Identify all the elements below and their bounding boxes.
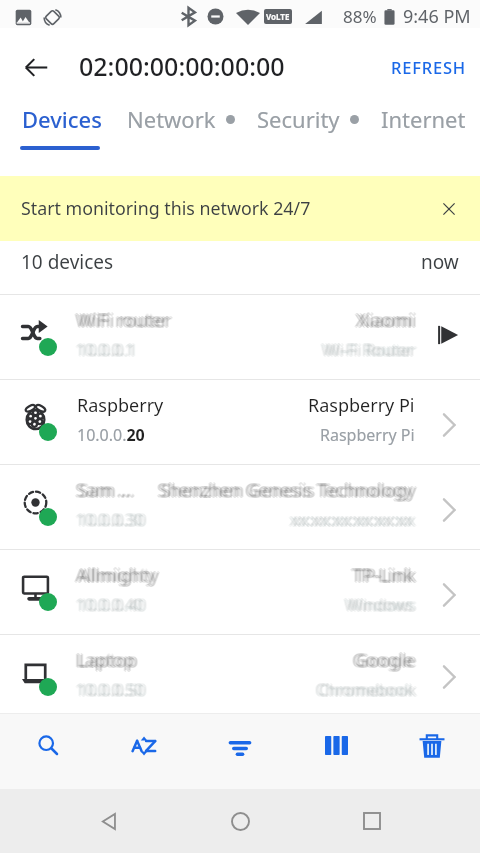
staticText: Shenzhen Genesis Technology — [160, 479, 416, 504]
button[interactable]: Allmighty — [0, 550, 480, 634]
staticText: Sam ... — [74, 478, 130, 503]
staticText: WiFi router — [76, 307, 170, 332]
staticText: Wi-Fi Router — [324, 340, 416, 362]
staticText: Xiaomi — [360, 308, 418, 333]
button[interactable]: Raspberry — [0, 380, 480, 464]
staticText: 10.0.0.1 — [76, 338, 135, 360]
staticText: Internet — [381, 104, 466, 134]
staticText: Xiaomi — [359, 307, 417, 332]
staticText: Shenzhen Genesis Technology — [159, 478, 415, 503]
staticText: Xiaomi — [356, 307, 414, 332]
staticText: 10.0.0.30 — [74, 509, 142, 531]
staticText: Allmighty — [74, 563, 155, 588]
staticText: TP-Link — [354, 564, 416, 589]
button[interactable]: Sort alphabetically — [96, 714, 192, 789]
button[interactable]: REFRESH — [375, 48, 480, 86]
staticText: Google — [354, 648, 415, 673]
staticText: Allmighty — [79, 562, 160, 587]
staticText: Shenzhen Genesis Technology — [162, 478, 418, 503]
staticText: Security — [257, 104, 340, 134]
staticText: 10.0.0.50 — [74, 679, 142, 701]
staticText: now — [421, 249, 459, 275]
button[interactable]: Back — [18, 49, 55, 86]
staticText: Shenzhen Genesis Technology — [157, 477, 413, 502]
staticText: Google — [353, 647, 414, 672]
staticText: 10 devices — [21, 249, 114, 275]
staticText: Shenzhen Genesis Technology — [158, 477, 414, 502]
staticText: 10.0.0.30 — [75, 510, 143, 532]
staticText: Google — [355, 649, 416, 674]
staticText: TP-Link — [351, 564, 413, 589]
staticText: Sam ... — [79, 479, 135, 504]
staticText: WiFi router — [79, 307, 173, 332]
staticText: Raspberry — [77, 393, 164, 418]
staticText: 10.0.0.1 — [75, 340, 134, 362]
button[interactable]: Close — [432, 192, 466, 226]
staticText: Chromebook — [317, 679, 415, 701]
staticText: 10.0.0.50 — [80, 679, 148, 701]
staticText: Wi-Fi Router — [325, 340, 417, 362]
button[interactable]: Delete — [384, 714, 480, 789]
button[interactable]: Back — [84, 797, 132, 845]
staticText: Allmighty — [75, 564, 156, 589]
staticText: Sam ... — [75, 477, 131, 502]
staticText: 10.0.0.40 — [74, 594, 142, 616]
staticText: Allmighty — [79, 564, 160, 589]
staticText: Xiaomi — [357, 308, 415, 333]
staticText: 10.0.0.1 — [77, 339, 136, 361]
staticText: 10.0.0.1 — [74, 339, 133, 361]
staticText: Wi-Fi Router — [326, 339, 418, 361]
button[interactable]: Columns — [288, 714, 384, 789]
staticText: Laptop — [76, 647, 136, 672]
staticText: Sam ... — [77, 478, 133, 503]
staticText: Sam ... — [80, 478, 136, 503]
staticText: TP-Link — [352, 562, 414, 587]
staticText: 88% — [343, 5, 377, 28]
staticText: WiFi router — [75, 307, 169, 332]
staticText: TP-Link — [355, 564, 417, 589]
staticText: 10.0.0.50 — [79, 678, 147, 700]
staticText: 10.0.0.50 — [78, 680, 146, 702]
staticText: TP-Link — [353, 563, 415, 588]
staticText: Sam ... — [75, 479, 131, 504]
button[interactable]: Home — [216, 797, 264, 845]
button[interactable]: Devices — [22, 104, 102, 134]
staticText: WiFi router — [79, 309, 173, 334]
button[interactable]: Laptop — [0, 635, 480, 713]
button[interactable]: Search — [0, 714, 96, 789]
staticText: Xiaomi — [355, 307, 413, 332]
staticText: Raspberry Pi — [320, 424, 415, 446]
staticText: Windows — [348, 593, 417, 615]
staticText: Laptop — [80, 648, 140, 673]
button[interactable]: Sam ... — [0, 465, 480, 549]
staticText: Allmighty — [77, 563, 158, 588]
button[interactable]: Internet — [381, 104, 466, 134]
staticText: Sam ... — [78, 479, 134, 504]
staticText: 10.0.0.30 — [76, 508, 144, 530]
staticText: Sam ... — [76, 477, 132, 502]
staticText: 10.0.0.1 — [78, 340, 137, 362]
staticText: Windows — [348, 595, 417, 617]
staticText: Windows — [349, 594, 418, 616]
staticText: 10.0.0.40 — [79, 595, 147, 617]
staticText: Windows — [344, 595, 413, 617]
staticText: 10.0.0.30 — [78, 510, 146, 532]
staticText: Xiaomi — [355, 309, 413, 334]
button[interactable]: Recents — [348, 797, 396, 845]
staticText: Chromebook — [315, 678, 413, 700]
staticText: Laptop — [74, 648, 134, 673]
staticText: 10.0.0.40 — [77, 594, 145, 616]
button[interactable]: WiFi router — [0, 295, 480, 379]
button[interactable]: Network — [127, 104, 235, 134]
button[interactable]: Start monitoring this network 24/7 — [0, 176, 480, 241]
button[interactable]: Filter — [192, 714, 288, 789]
staticText: Shenzhen Genesis Technology — [156, 478, 412, 503]
staticText: Chromebook — [319, 678, 417, 700]
staticText: 10.0.0.1 — [80, 339, 139, 361]
staticText: xx:xx:xx:xx:xx:xx — [293, 508, 417, 530]
staticText: Windows — [343, 594, 412, 616]
staticText: 10.0.0.50 — [75, 678, 143, 700]
button[interactable]: Security — [257, 104, 359, 134]
staticText: Chromebook — [319, 680, 417, 702]
staticText: xx:xx:xx:xx:xx:xx — [290, 508, 414, 530]
